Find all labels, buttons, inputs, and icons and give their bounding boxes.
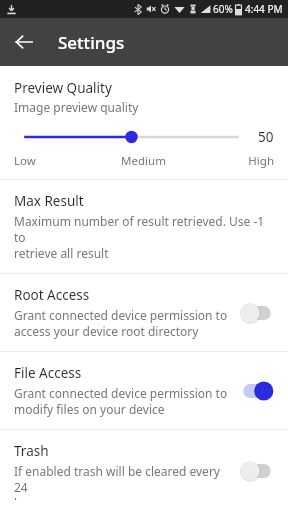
staticText: retrieve all result bbox=[14, 245, 109, 261]
staticText: 50 bbox=[258, 128, 274, 146]
staticText: If enabled trash will be cleared every 2… bbox=[14, 463, 232, 495]
staticText: File Access bbox=[14, 364, 82, 382]
button[interactable]: Toggle off bbox=[238, 459, 276, 483]
staticText: modify files on your device bbox=[14, 401, 165, 417]
button[interactable]: Back bbox=[6, 24, 42, 60]
staticText: Maximum number of result retrieved. Use … bbox=[14, 213, 274, 245]
staticText: Settings bbox=[58, 31, 125, 54]
staticText: High bbox=[187, 153, 274, 169]
staticText: Medium bbox=[100, 153, 187, 169]
button[interactable]: Preview Quality bbox=[0, 66, 288, 179]
staticText: Max Result bbox=[14, 192, 84, 210]
button[interactable]: Root Access bbox=[0, 274, 288, 351]
staticText: Grant connected device permission to bbox=[14, 307, 228, 323]
staticText: hours bbox=[14, 495, 47, 500]
staticText: Trash bbox=[14, 442, 49, 460]
staticText: Image preview quality bbox=[14, 99, 139, 115]
button[interactable]: File Access bbox=[0, 352, 288, 429]
button[interactable]: Max Result bbox=[0, 180, 288, 273]
staticText: Preview Quality bbox=[14, 79, 112, 97]
staticText: 4:44 PM bbox=[245, 2, 283, 16]
button[interactable]: Toggle on bbox=[238, 379, 276, 403]
staticText: access your device root directory bbox=[14, 323, 199, 339]
button[interactable]: Trash bbox=[0, 430, 288, 512]
staticText: Low bbox=[14, 153, 100, 169]
staticText: Grant connected device permission to bbox=[14, 385, 228, 401]
staticText: 60% bbox=[213, 2, 233, 16]
staticText: Root Access bbox=[14, 286, 90, 304]
button[interactable]: Toggle off bbox=[238, 301, 276, 325]
